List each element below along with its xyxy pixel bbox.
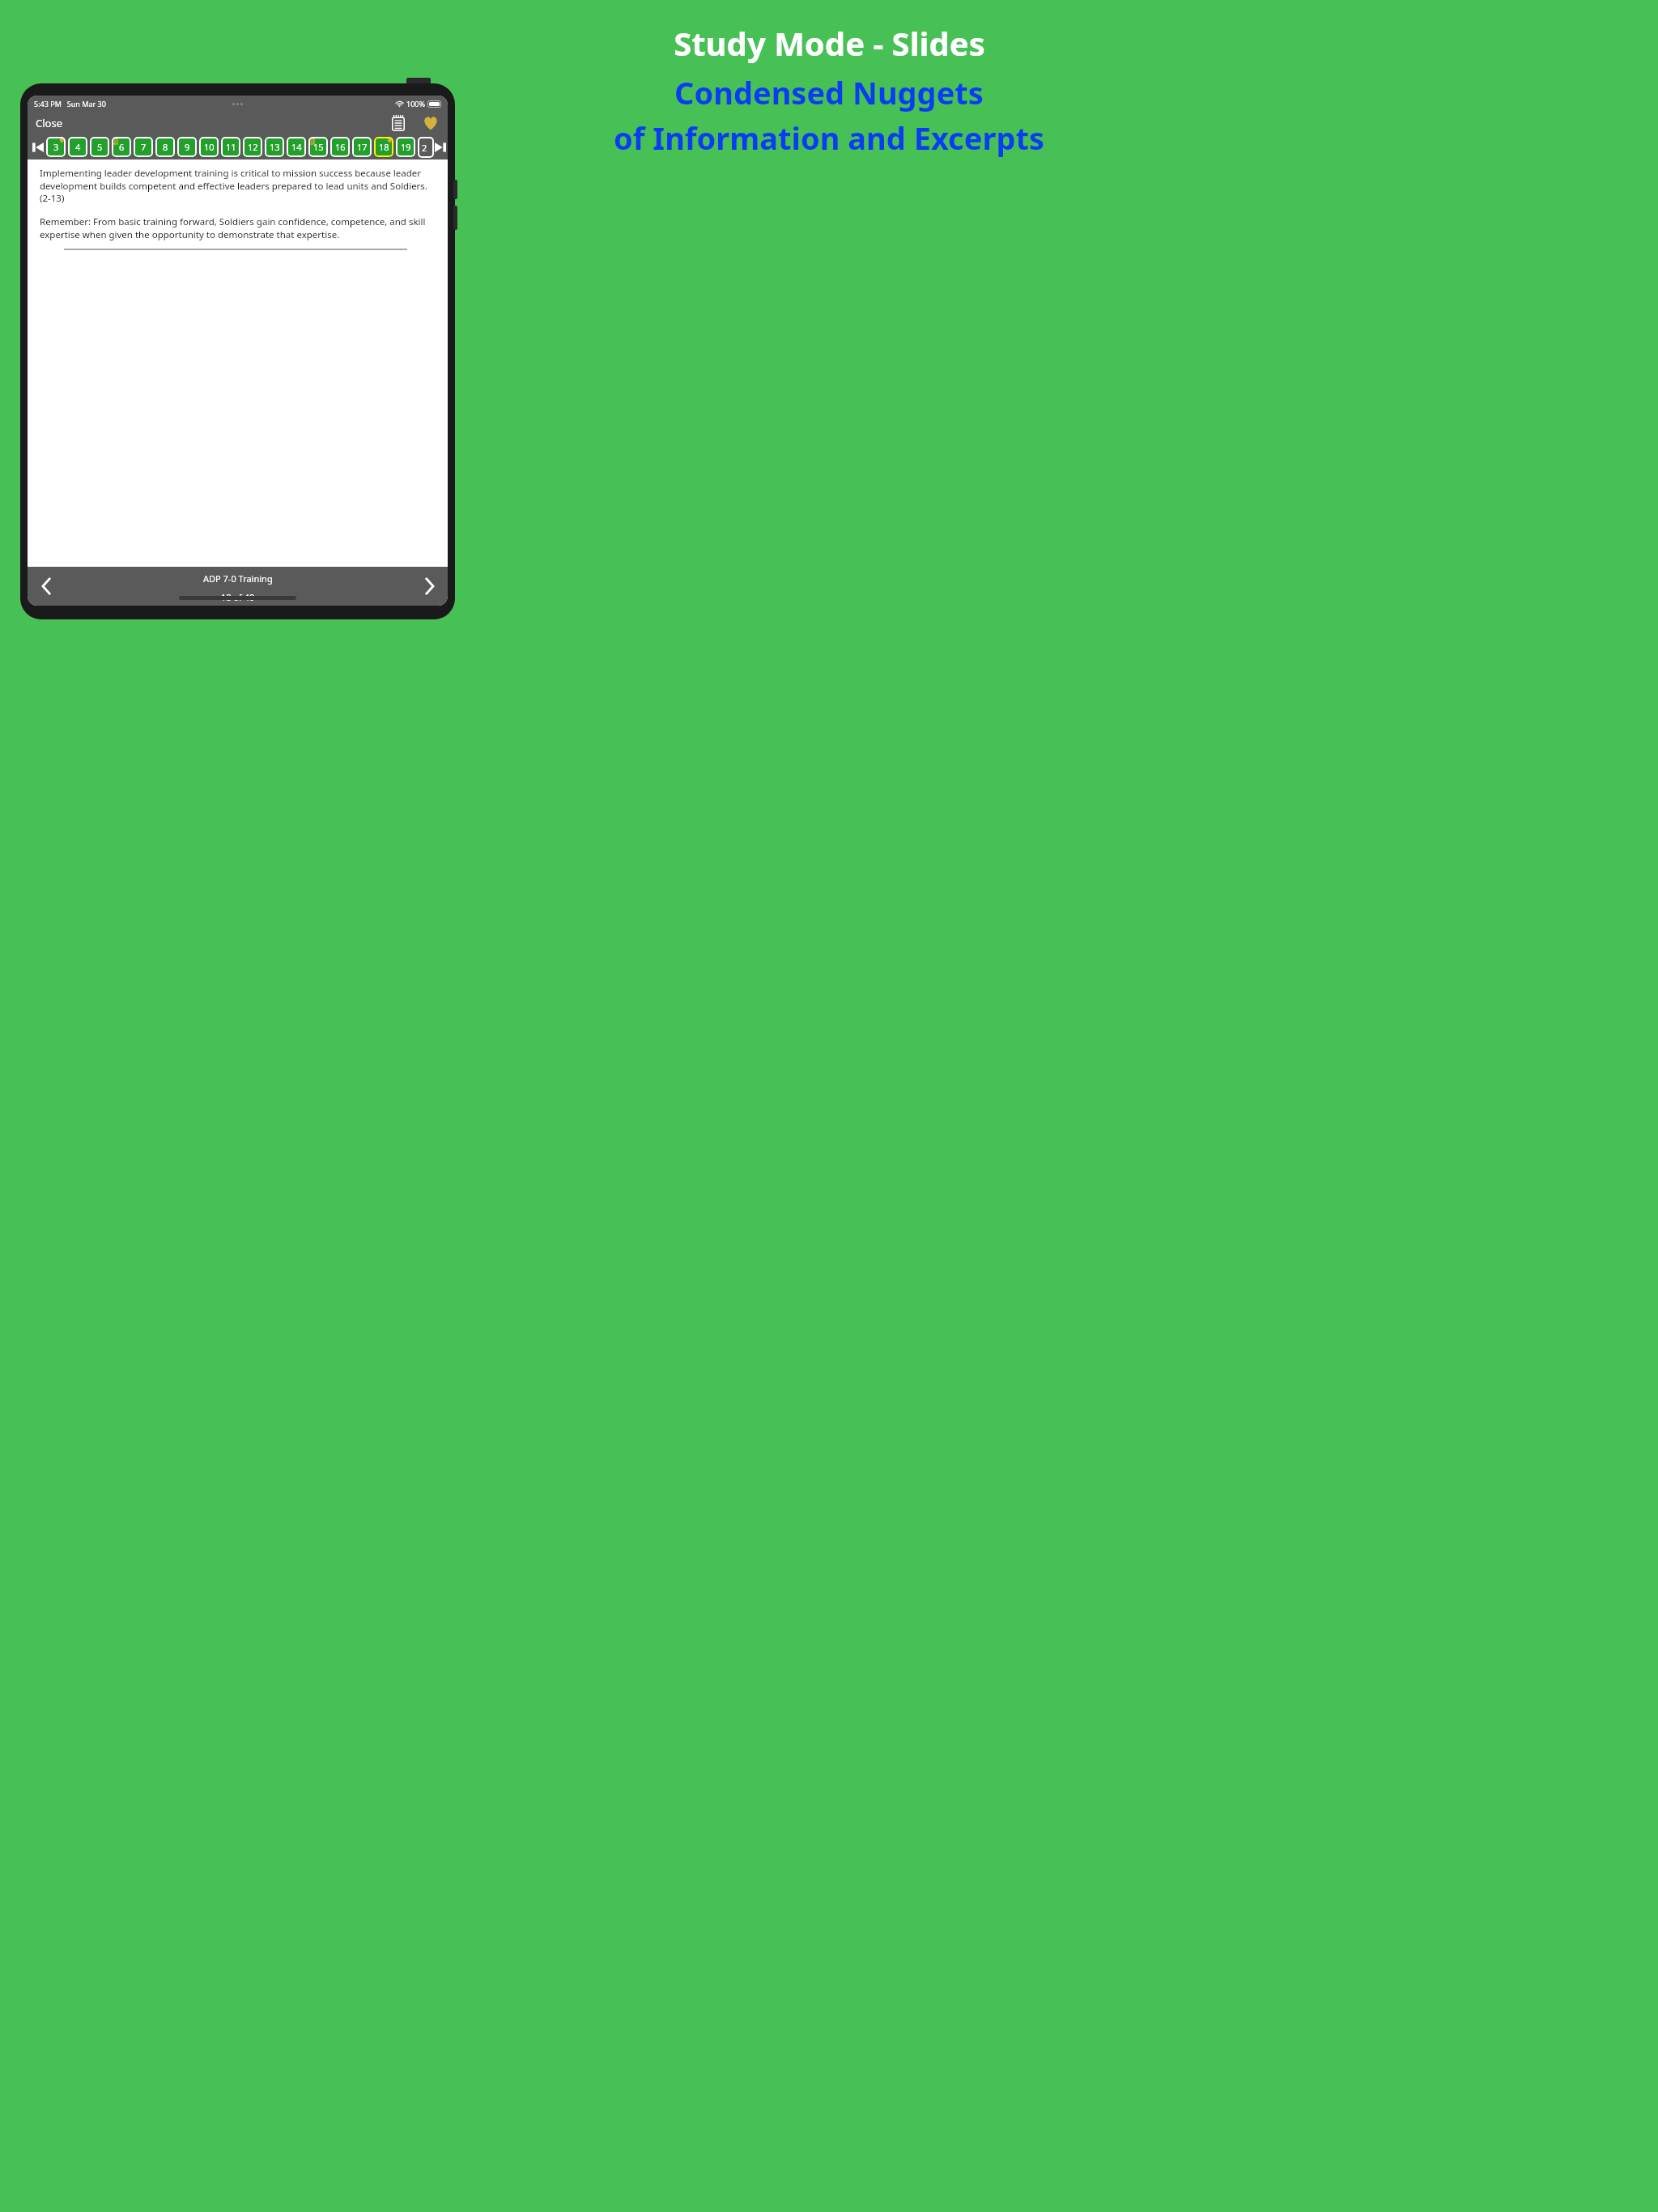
button[interactable]: Close — [28, 113, 70, 134]
staticText: ADP 7-0 Training — [203, 572, 273, 585]
button[interactable]: 5 — [90, 137, 109, 157]
button[interactable]: 9 — [177, 137, 197, 157]
staticText: Close — [36, 116, 62, 130]
staticText: 10 — [204, 141, 215, 153]
staticText: 11 — [226, 141, 236, 153]
button[interactable]: 4 — [68, 137, 87, 157]
button[interactable]: 10 — [199, 137, 219, 157]
button[interactable]: 16 — [330, 137, 350, 157]
button[interactable]: Next — [415, 572, 443, 600]
staticText: 3 — [53, 141, 59, 153]
staticText: 13 — [270, 141, 280, 153]
button[interactable]: Previous — [32, 572, 60, 600]
button[interactable]: 3 — [46, 137, 66, 157]
button[interactable]: Last slide — [434, 137, 447, 158]
button[interactable]: 13 — [265, 137, 284, 157]
button[interactable]: 12 — [243, 137, 262, 157]
staticText: 15 — [313, 141, 324, 153]
staticText: of Information and Excerpts — [614, 117, 1044, 159]
staticText: 7 — [141, 141, 147, 153]
staticText: Implementing leader development training… — [40, 167, 436, 204]
button[interactable]: 14 — [287, 137, 306, 157]
button[interactable]: 2 — [418, 137, 434, 158]
staticText: 6 — [119, 141, 125, 153]
staticText: 19 — [401, 141, 411, 153]
staticText: 8 — [163, 141, 168, 153]
staticText: 18 of 40 — [221, 591, 255, 603]
button[interactable]: Favorite — [420, 113, 441, 134]
button[interactable]: 17 — [352, 137, 372, 157]
staticText: 5:43 PM Sun Mar 30 — [34, 99, 106, 108]
staticText: 14 — [291, 141, 302, 153]
staticText: 9 — [185, 141, 190, 153]
button[interactable]: 6 — [112, 137, 131, 157]
button[interactable]: 8 — [155, 137, 175, 157]
staticText: 2 — [422, 142, 427, 154]
staticText: 12 — [248, 141, 258, 153]
staticText: 100% — [406, 99, 425, 108]
staticText: 16 — [335, 141, 346, 153]
button[interactable]: 7 — [134, 137, 153, 157]
staticText: Study Mode - Slides — [674, 21, 985, 65]
button[interactable]: 15 — [308, 137, 328, 157]
staticText: 5 — [97, 141, 103, 153]
button[interactable]: 18 — [374, 137, 393, 157]
button[interactable]: 11 — [221, 137, 240, 157]
button[interactable]: First slide — [31, 137, 45, 158]
staticText: Remember: From basic training forward, S… — [40, 215, 436, 240]
staticText: 17 — [357, 141, 368, 153]
button[interactable]: 19 — [396, 137, 415, 157]
button[interactable]: Notes — [388, 113, 409, 134]
staticText: 18 — [379, 141, 389, 153]
staticText: 4 — [75, 141, 81, 153]
staticText: Condensed Nuggets — [674, 71, 984, 113]
